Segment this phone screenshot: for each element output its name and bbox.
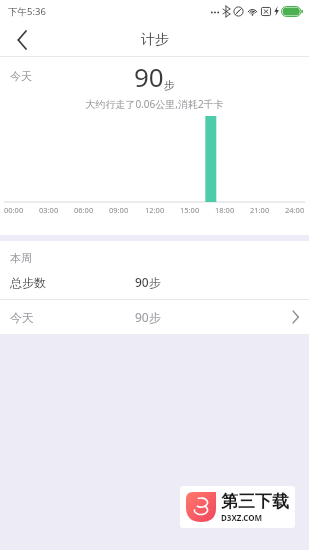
staticText: 今天 bbox=[10, 310, 135, 325]
staticText: 21:00 bbox=[250, 205, 270, 215]
staticText: D3XZ.COM bbox=[221, 512, 263, 523]
button[interactable]: 总步数 bbox=[0, 265, 309, 299]
staticText: 03:00 bbox=[39, 205, 59, 215]
staticText: 09:00 bbox=[109, 205, 129, 215]
staticText: 第三下载 bbox=[221, 491, 289, 512]
button[interactable]: Back bbox=[0, 22, 44, 57]
staticText: 12:00 bbox=[145, 205, 165, 215]
staticText: 步 bbox=[164, 78, 175, 92]
staticText: 24:00 bbox=[285, 205, 305, 215]
staticText: 下午5:36 bbox=[8, 5, 46, 18]
staticText: 18:00 bbox=[215, 205, 235, 215]
staticText: 90步 bbox=[135, 274, 161, 290]
staticText: 90 bbox=[134, 59, 164, 94]
staticText: 计步 bbox=[141, 31, 169, 49]
button[interactable]: 今天 bbox=[0, 300, 309, 334]
staticText: 90步 bbox=[135, 309, 161, 325]
staticText: 今天 bbox=[10, 69, 32, 83]
staticText: 总步数 bbox=[10, 275, 135, 290]
staticText: 本周 bbox=[10, 251, 32, 265]
staticText: 06:00 bbox=[74, 205, 94, 215]
staticText: 大约行走了0.06公里,消耗2千卡 bbox=[0, 97, 309, 111]
staticText: 00:00 bbox=[4, 205, 24, 215]
staticText: 15:00 bbox=[180, 205, 200, 215]
